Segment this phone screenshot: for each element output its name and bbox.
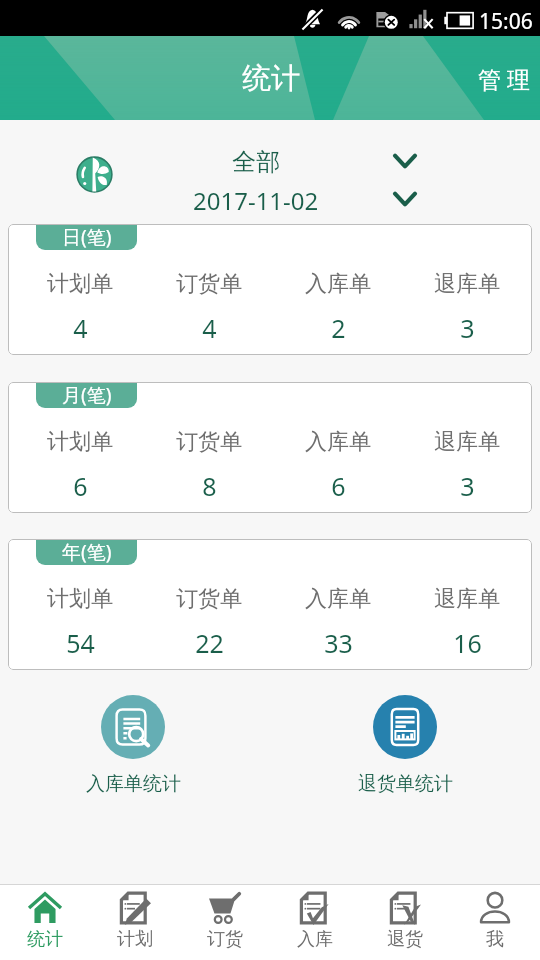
- staticText: 订货单: [176, 270, 242, 298]
- staticText: 我: [486, 928, 504, 951]
- staticText: 计划单: [47, 585, 113, 613]
- staticText: 退库单: [434, 270, 500, 298]
- button[interactable]: Chart type: [76, 156, 113, 193]
- staticText: 入库单统计: [86, 772, 181, 796]
- staticText: 8: [202, 469, 217, 503]
- staticText: 退货单统计: [358, 772, 453, 796]
- button[interactable]: 退货: [360, 884, 450, 960]
- staticText: 退库单: [434, 585, 500, 613]
- staticText: 管 理: [478, 63, 530, 94]
- staticText: 入库单: [305, 270, 371, 298]
- button[interactable]: 入库: [270, 884, 360, 960]
- staticText: 54: [66, 626, 95, 660]
- button[interactable]: 统计: [0, 884, 90, 960]
- button[interactable]: 管 理: [468, 47, 540, 110]
- staticText: 6: [73, 469, 88, 503]
- button[interactable]: 退货单统计: [335, 695, 475, 796]
- staticText: 33: [324, 626, 353, 660]
- staticText: 计划单: [47, 270, 113, 298]
- button[interactable]: 年(笔): [8, 539, 532, 670]
- button[interactable]: Select type: [385, 142, 425, 180]
- staticText: 退货: [387, 928, 423, 951]
- staticText: 计划单: [47, 428, 113, 456]
- staticText: 2: [331, 311, 346, 345]
- button[interactable]: 入库单统计: [63, 695, 203, 796]
- button[interactable]: 计划: [90, 884, 180, 960]
- staticText: 4: [202, 311, 217, 345]
- button[interactable]: 订货: [180, 884, 270, 960]
- staticText: 统计: [27, 928, 63, 951]
- staticText: 月(笔): [62, 382, 112, 408]
- staticText: 15:06: [479, 7, 533, 36]
- staticText: 计划: [117, 928, 153, 951]
- staticText: 订货单: [176, 585, 242, 613]
- staticText: 2017-11-02: [193, 184, 319, 217]
- staticText: 年(笔): [62, 539, 112, 565]
- staticText: 订货单: [176, 428, 242, 456]
- staticText: 入库单: [305, 585, 371, 613]
- staticText: 16: [453, 626, 482, 660]
- staticText: 入库: [297, 928, 333, 951]
- button[interactable]: 2017-11-02: [166, 181, 346, 219]
- staticText: 22: [195, 626, 224, 660]
- button[interactable]: 全部: [166, 143, 346, 181]
- staticText: 日(笔): [62, 224, 112, 250]
- button[interactable]: 我: [450, 884, 540, 960]
- staticText: 订货: [207, 928, 243, 951]
- staticText: 3: [460, 311, 475, 345]
- button[interactable]: 日(笔): [8, 224, 532, 355]
- button[interactable]: Select date: [385, 180, 425, 218]
- staticText: 入库单: [305, 428, 371, 456]
- staticText: 4: [73, 311, 88, 345]
- button[interactable]: 月(笔): [8, 382, 532, 513]
- staticText: 全部: [232, 147, 280, 177]
- staticText: 6: [331, 469, 346, 503]
- staticText: 3: [460, 469, 475, 503]
- staticText: 退库单: [434, 428, 500, 456]
- staticText: 统计: [242, 60, 300, 97]
